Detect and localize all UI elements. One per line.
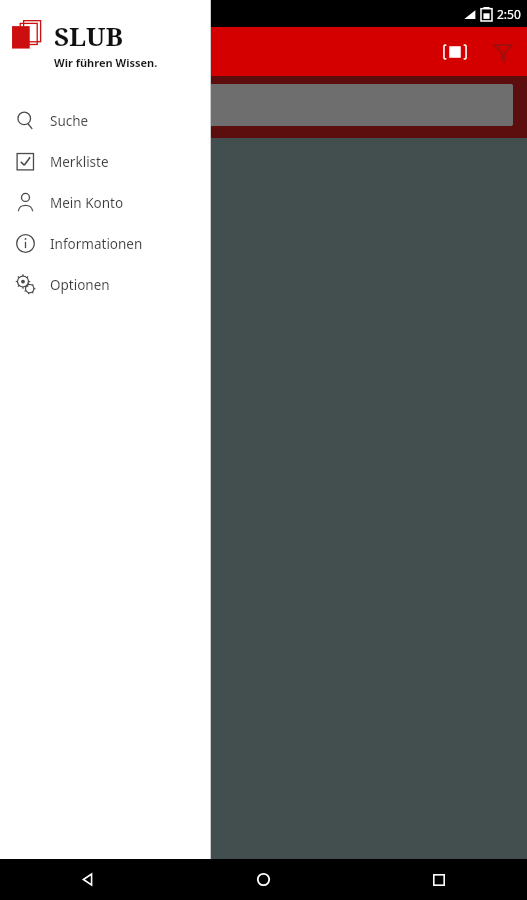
button[interactable]: Suche <box>0 100 211 141</box>
button[interactable]: Back <box>0 859 175 900</box>
staticText: Informationen <box>50 235 143 253</box>
button[interactable]: Home <box>175 859 351 900</box>
staticText: Optionen <box>50 276 110 294</box>
staticText: Suche <box>50 112 89 130</box>
button[interactable]: Filter <box>479 28 527 76</box>
staticText: Mein Konto <box>50 194 124 212</box>
button[interactable]: Back <box>3 28 51 76</box>
staticText: Wir führen Wissen. <box>54 55 158 70</box>
button[interactable]: Optionen <box>0 264 211 305</box>
staticText: 2:50 <box>497 6 521 22</box>
button[interactable]: Recent apps <box>351 859 527 900</box>
staticText: Merkliste <box>50 153 109 171</box>
button[interactable]: Mein Konto <box>0 182 211 223</box>
button[interactable] <box>14 84 513 126</box>
staticText: Suche <box>55 39 107 64</box>
button[interactable]: Scan barcode <box>431 28 479 76</box>
button[interactable]: Merkliste <box>0 141 211 182</box>
button[interactable]: Informationen <box>0 223 211 264</box>
staticText: SLUB <box>54 18 123 53</box>
